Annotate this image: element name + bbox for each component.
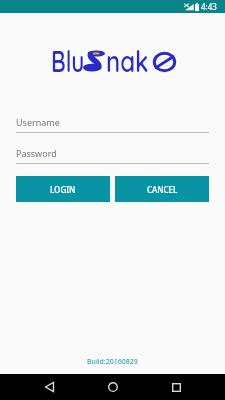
staticText: Build:20160829 [87,357,138,367]
button[interactable]: Recents [156,377,196,397]
staticText: Password [16,147,57,159]
staticText: 4:43 [201,1,217,12]
staticText: nak [106,42,149,80]
button[interactable]: Back [29,377,69,397]
button[interactable]: CANCEL [115,176,209,202]
staticText: Username [16,116,60,128]
staticText: LOGIN [50,184,76,195]
button[interactable]: LOGIN [16,176,110,202]
staticText: CANCEL [147,184,178,195]
button[interactable]: Home [93,377,133,397]
staticText: Blu [51,42,85,80]
